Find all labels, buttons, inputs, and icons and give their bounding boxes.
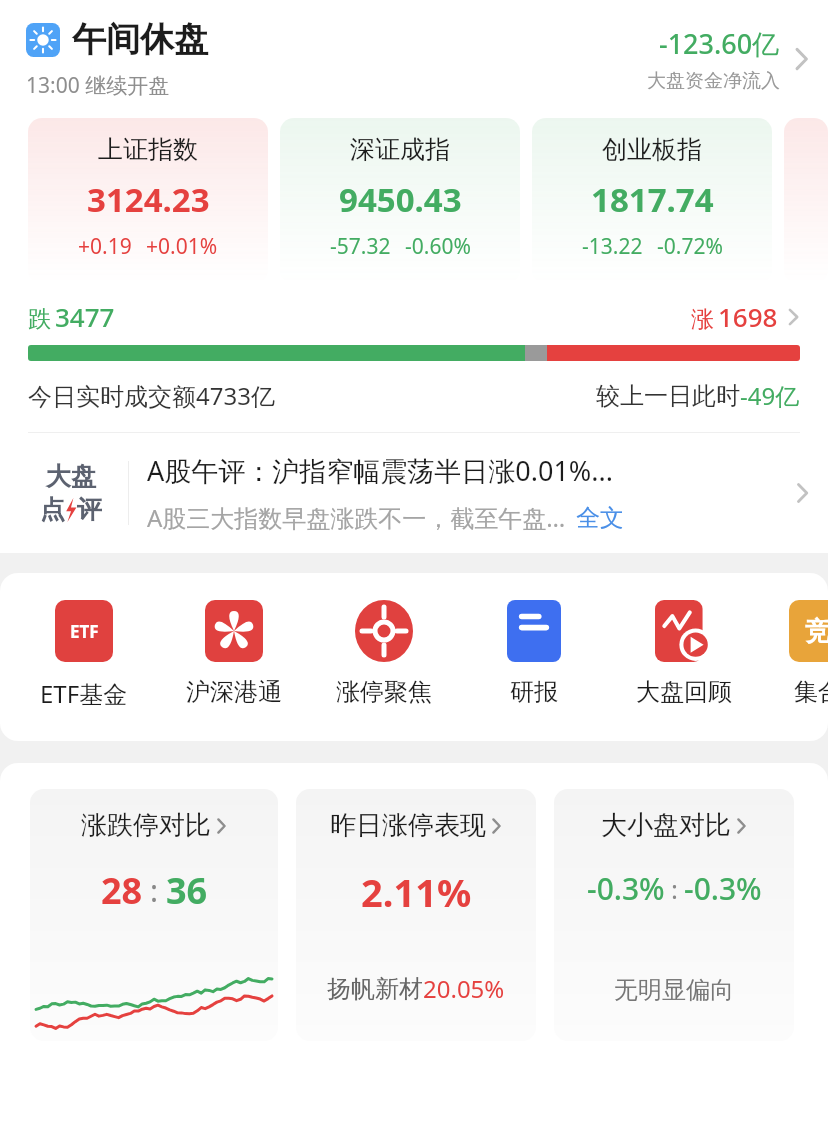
- staticText: 无明显偏向: [614, 975, 734, 1005]
- staticText: -0.3%: [684, 868, 762, 909]
- staticText: 竞: [805, 615, 828, 648]
- button[interactable]: 昨日涨停表现: [296, 789, 536, 1041]
- button[interactable]: 上证指数: [28, 118, 268, 283]
- staticText: -0.60%: [405, 232, 471, 261]
- button[interactable]: 涨停聚焦: [309, 599, 459, 707]
- staticText: A股午评：沪指窄幅震荡半日涨0.01%...: [147, 452, 613, 489]
- staticText: -123.60亿: [659, 25, 780, 62]
- staticText: 2.11%: [361, 866, 472, 918]
- button[interactable]: 创业板指: [532, 118, 772, 283]
- staticText: 深证成指: [350, 134, 450, 165]
- button[interactable]: 竞: [743, 599, 828, 707]
- staticText: 扬帆新材: [327, 974, 423, 1004]
- staticText: -49亿: [740, 379, 800, 412]
- staticText: ETF基金: [40, 677, 128, 710]
- staticText: 创业板指: [602, 134, 702, 165]
- staticText: -57.32: [330, 232, 391, 261]
- staticText: -0.72%: [657, 232, 723, 261]
- staticText: :: [671, 871, 678, 906]
- staticText: 9450.43: [339, 177, 462, 222]
- button[interactable]: 跌: [0, 299, 828, 412]
- staticText: 1817.74: [591, 177, 714, 222]
- staticText: 3477: [55, 299, 115, 334]
- staticText: 20.05%: [423, 972, 505, 1005]
- staticText: 今日实时成交额4733亿: [28, 379, 275, 412]
- staticText: 昨日涨停表现: [330, 809, 486, 842]
- staticText: 36: [166, 866, 208, 915]
- staticText: +0.01%: [146, 232, 218, 261]
- button[interactable]: 大盘: [0, 433, 828, 553]
- button[interactable]: ETF: [9, 599, 159, 710]
- staticText: 大小盘对比: [601, 809, 731, 842]
- button[interactable]: 深证成指: [280, 118, 520, 283]
- staticText: A股三大指数早盘涨跌不一，截至午盘…: [147, 501, 566, 534]
- staticText: -0.3%: [587, 868, 665, 909]
- staticText: 3124.23: [87, 177, 210, 222]
- staticText: -13.22: [582, 232, 643, 261]
- staticText: 点: [40, 494, 65, 525]
- staticText: 上证指数: [98, 134, 198, 165]
- button[interactable]: 涨跌停对比: [30, 789, 278, 1041]
- staticText: 1698: [718, 299, 778, 334]
- staticText: 沪深港通: [186, 677, 282, 707]
- button[interactable]: 大盘回顾: [609, 599, 759, 707]
- staticText: 评: [77, 494, 102, 525]
- button[interactable]: 午间休盘: [0, 0, 828, 118]
- staticText: 跌: [28, 305, 51, 334]
- staticText: 午间休盘: [72, 18, 208, 61]
- button[interactable]: 研报: [459, 599, 609, 707]
- staticText: 大盘: [46, 461, 96, 492]
- button[interactable]: 沪深港通: [159, 599, 309, 707]
- staticText: 涨停聚焦: [336, 677, 432, 707]
- staticText: 13:00 继续开盘: [26, 71, 170, 100]
- staticText: ETF: [70, 620, 99, 643]
- staticText: +0.19: [78, 232, 132, 261]
- staticText: 涨跌停对比: [81, 809, 211, 842]
- staticText: 研报: [510, 677, 558, 707]
- staticText: :: [150, 870, 159, 911]
- staticText: 大盘资金净流入: [647, 69, 780, 93]
- staticText: 集合: [794, 677, 828, 707]
- staticText: 全文: [576, 503, 624, 533]
- staticText: 28: [101, 866, 143, 915]
- staticText: 大盘回顾: [636, 677, 732, 707]
- staticText: 较上一日此时: [596, 381, 740, 411]
- staticText: 涨: [691, 305, 714, 334]
- button[interactable]: 大小盘对比: [554, 789, 794, 1041]
